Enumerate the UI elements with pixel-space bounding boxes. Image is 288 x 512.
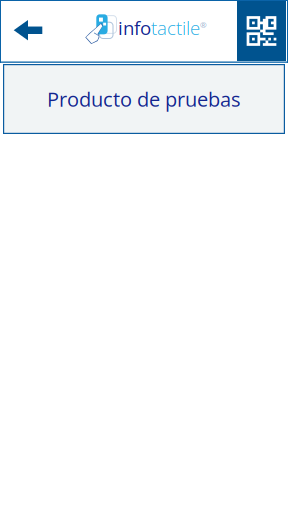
- staticText: tactile: [151, 15, 200, 40]
- button[interactable]: Back: [1, 1, 59, 62]
- staticText: Producto de pruebas: [47, 85, 241, 113]
- staticText: ®: [200, 19, 207, 30]
- staticText: info: [118, 15, 151, 40]
- button[interactable]: Scan QR code: [237, 1, 286, 61]
